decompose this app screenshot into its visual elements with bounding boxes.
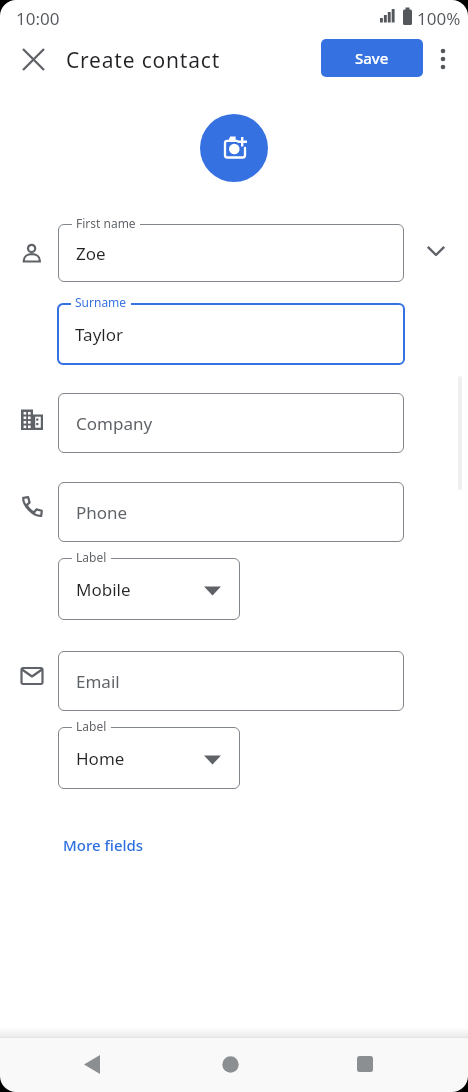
button[interactable]: Home bbox=[58, 727, 240, 789]
staticText: Taylor bbox=[75, 323, 123, 346]
staticText: Label bbox=[76, 549, 107, 565]
button[interactable]: Mobile bbox=[58, 558, 240, 620]
staticText: Create contact bbox=[66, 46, 221, 75]
staticText: Phone bbox=[76, 501, 128, 524]
staticText: 10:00 bbox=[16, 7, 60, 30]
button[interactable] bbox=[341, 1040, 389, 1088]
staticText: Label bbox=[76, 718, 107, 734]
button[interactable]: Email bbox=[58, 651, 404, 711]
button[interactable] bbox=[429, 45, 457, 73]
staticText: More fields bbox=[63, 835, 144, 855]
staticText: First name bbox=[76, 215, 136, 231]
button[interactable]: Company bbox=[58, 393, 404, 453]
button[interactable] bbox=[12, 38, 54, 80]
button[interactable]: Taylor bbox=[57, 303, 405, 365]
button[interactable] bbox=[68, 1040, 116, 1088]
button[interactable] bbox=[200, 114, 268, 182]
staticText: Save bbox=[355, 48, 389, 68]
staticText: Company bbox=[76, 412, 153, 435]
button[interactable] bbox=[412, 227, 460, 275]
staticText: Mobile bbox=[76, 578, 131, 601]
button[interactable] bbox=[206, 1040, 254, 1088]
staticText: 100% bbox=[417, 7, 461, 30]
button[interactable]: Zoe bbox=[58, 224, 404, 282]
button[interactable]: More fields bbox=[50, 825, 157, 865]
button[interactable]: Save bbox=[321, 39, 423, 77]
staticText: Home bbox=[76, 747, 125, 770]
button[interactable]: Phone bbox=[58, 482, 404, 542]
staticText: Email bbox=[76, 670, 120, 693]
staticText: Zoe bbox=[76, 242, 106, 265]
staticText: Surname bbox=[75, 294, 127, 310]
